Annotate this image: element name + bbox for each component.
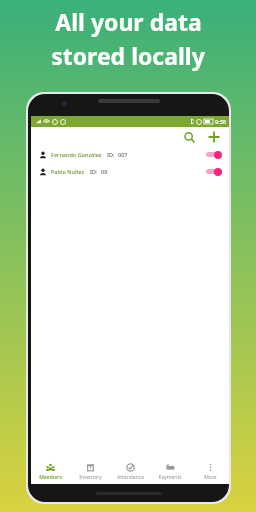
staticText: 007 — [118, 151, 128, 158]
button[interactable]: Pablo Núñez — [34, 164, 227, 179]
staticText: Attendance — [117, 474, 144, 481]
button[interactable]: More — [190, 460, 229, 484]
staticText: All your data — [55, 6, 202, 37]
staticText: 9:36 — [215, 118, 226, 125]
staticText: ID: — [107, 151, 115, 158]
button[interactable]: Add member — [205, 128, 223, 146]
button[interactable]: Attendance — [110, 460, 150, 484]
staticText: 09 — [101, 168, 108, 175]
staticText: Fernando González — [51, 151, 102, 158]
staticText: Members — [39, 474, 62, 481]
button[interactable]: Payments — [150, 460, 190, 484]
button[interactable]: Inventory — [70, 460, 110, 484]
button[interactable]: Toggle active — [205, 149, 222, 160]
staticText: Pablo Núñez — [51, 168, 85, 175]
button[interactable]: Search — [180, 128, 198, 146]
staticText: ID: — [90, 168, 98, 175]
button[interactable]: Toggle active — [205, 166, 222, 177]
button[interactable]: Fernando González — [34, 147, 227, 162]
staticText: Inventory — [79, 474, 102, 481]
staticText: More — [204, 474, 217, 481]
staticText: Payments — [158, 474, 182, 481]
button[interactable]: Members — [31, 460, 70, 484]
staticText: stored locally — [51, 40, 205, 71]
